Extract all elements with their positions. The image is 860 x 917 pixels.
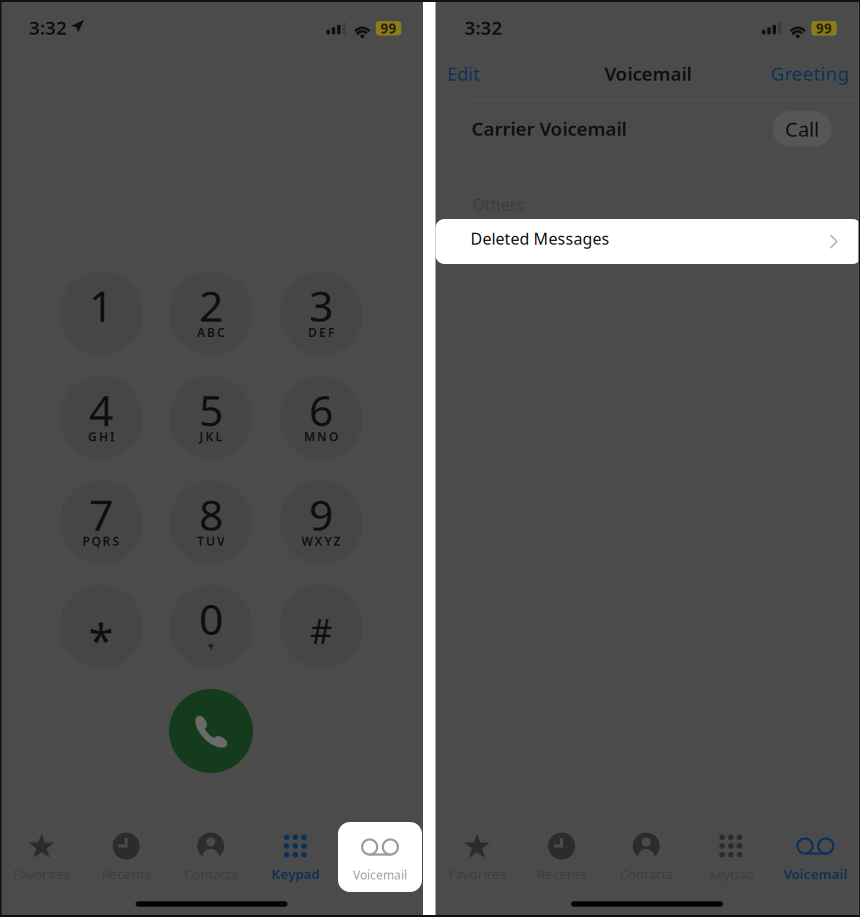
button[interactable]: Keypad <box>688 832 773 884</box>
staticText: 2 <box>199 277 223 334</box>
staticText: Recents <box>537 865 586 883</box>
staticText: Keypad <box>708 865 753 883</box>
staticText: Voicemail <box>353 867 407 883</box>
staticText: # <box>310 607 332 653</box>
button[interactable]: Voicemail <box>773 832 858 884</box>
staticText: Favorites <box>448 865 505 883</box>
staticText: + <box>207 637 214 653</box>
staticText: 4 <box>89 381 113 438</box>
staticText: 7 <box>89 486 113 542</box>
button[interactable]: Contacts <box>168 832 253 884</box>
button[interactable]: 7 <box>59 480 143 564</box>
staticText: 6 <box>309 381 333 438</box>
staticText: JKL <box>199 429 222 445</box>
staticText: Edit <box>447 61 480 86</box>
staticText: Recents <box>102 865 151 883</box>
staticText: Voicemail <box>604 61 691 86</box>
button[interactable]: Favorites <box>0 832 84 884</box>
button[interactable]: 6 <box>279 376 363 460</box>
button[interactable]: # <box>279 584 363 668</box>
button[interactable]: 5 <box>169 376 253 460</box>
button[interactable]: Call <box>772 111 831 147</box>
staticText: 9 <box>309 486 333 542</box>
button[interactable]: * <box>59 584 143 668</box>
staticText: Keypad <box>271 865 319 883</box>
staticText: * <box>88 610 113 670</box>
button[interactable]: Recents <box>519 832 604 884</box>
button[interactable]: Contacts <box>604 832 688 884</box>
button[interactable]: Keypad <box>253 832 338 884</box>
staticText: 3 <box>309 277 333 334</box>
staticText: 3:32 <box>464 15 502 40</box>
staticText: 99 <box>381 19 397 37</box>
staticText: 99 <box>816 19 832 37</box>
staticText: Greeting <box>770 61 848 86</box>
button[interactable]: 9 <box>279 480 363 564</box>
staticText: DEF <box>308 324 334 340</box>
staticText: GHI <box>88 429 114 445</box>
staticText: Carrier Voicemail <box>471 116 626 141</box>
button[interactable]: 2 <box>169 271 253 355</box>
staticText: 5 <box>199 381 223 438</box>
staticText: Contacts <box>620 865 673 883</box>
button[interactable]: Call <box>169 689 253 773</box>
button[interactable]: Greeting <box>766 56 852 90</box>
button[interactable]: 8 <box>169 480 253 564</box>
staticText: WXYZ <box>301 533 340 549</box>
staticText: 3:32 <box>29 15 67 40</box>
staticText: ABC <box>197 324 225 340</box>
button[interactable]: Recents <box>84 832 168 884</box>
button[interactable]: Edit <box>440 56 486 90</box>
button[interactable]: Voicemail <box>338 822 422 892</box>
staticText: 1 <box>89 277 113 334</box>
staticText: MNO <box>304 429 338 445</box>
button[interactable]: Favorites <box>435 832 519 884</box>
staticText: Favorites <box>13 865 70 883</box>
button[interactable]: 0 <box>169 584 253 668</box>
button[interactable]: 4 <box>59 376 143 460</box>
button[interactable]: Deleted Messages <box>435 219 860 264</box>
staticText: 8 <box>199 486 223 542</box>
staticText: Call <box>785 116 819 142</box>
button[interactable]: 3 <box>279 271 363 355</box>
staticText: Contacts <box>184 865 237 883</box>
staticText: PQRS <box>82 533 119 549</box>
staticText: Deleted Messages <box>470 228 609 249</box>
staticText: Voicemail <box>783 865 847 883</box>
button[interactable]: 1 <box>59 271 143 355</box>
staticText: Others <box>472 194 524 215</box>
staticText: TUV <box>197 533 225 549</box>
staticText: 0 <box>199 590 223 647</box>
